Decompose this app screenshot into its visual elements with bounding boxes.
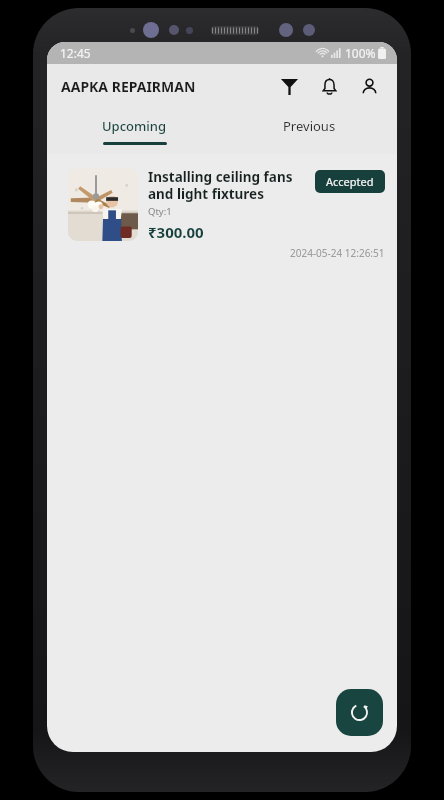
- button[interactable]: Upcoming: [47, 108, 222, 154]
- staticText: Upcoming: [102, 117, 167, 135]
- button[interactable]: Installing ceiling fans: [47, 154, 397, 260]
- staticText: Accepted: [326, 174, 374, 189]
- button[interactable]: Notifications: [309, 66, 349, 106]
- button[interactable]: Filter: [269, 66, 309, 106]
- button[interactable]: Accepted: [315, 170, 385, 193]
- staticText: ₹300.00: [148, 222, 204, 242]
- staticText: 12:45: [60, 45, 91, 61]
- staticText: AAPKA REPAIRMAN: [61, 77, 196, 96]
- staticText: Qty:1: [148, 205, 172, 218]
- button[interactable]: Refresh: [336, 689, 383, 736]
- staticText: 2024-05-24 12:26:51: [290, 246, 385, 260]
- staticText: and light fixtures: [148, 185, 264, 203]
- staticText: Installing ceiling fans: [148, 168, 293, 186]
- button[interactable]: Previous: [222, 108, 397, 154]
- button[interactable]: Profile: [349, 66, 389, 106]
- staticText: 100%: [345, 45, 376, 61]
- staticText: Previous: [283, 117, 336, 135]
